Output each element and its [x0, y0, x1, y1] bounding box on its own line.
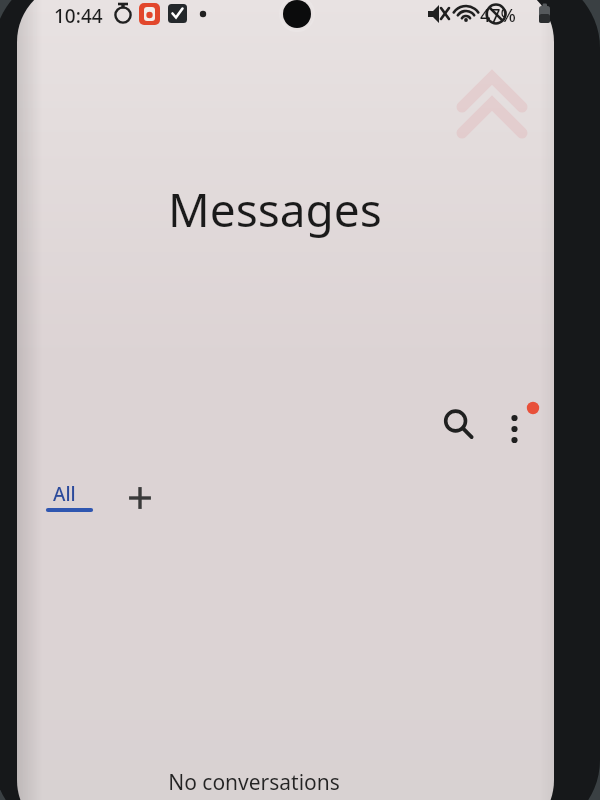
staticText: Messages [168, 178, 382, 241]
staticText: 10:44 [54, 3, 103, 29]
button[interactable]: All [44, 478, 94, 512]
button[interactable]: Search [434, 400, 482, 448]
staticText: All [53, 481, 76, 507]
button[interactable]: Add category [118, 476, 162, 520]
staticText: No conversations [168, 768, 340, 797]
button[interactable]: More options [492, 396, 540, 444]
staticText: 47% [480, 3, 516, 28]
